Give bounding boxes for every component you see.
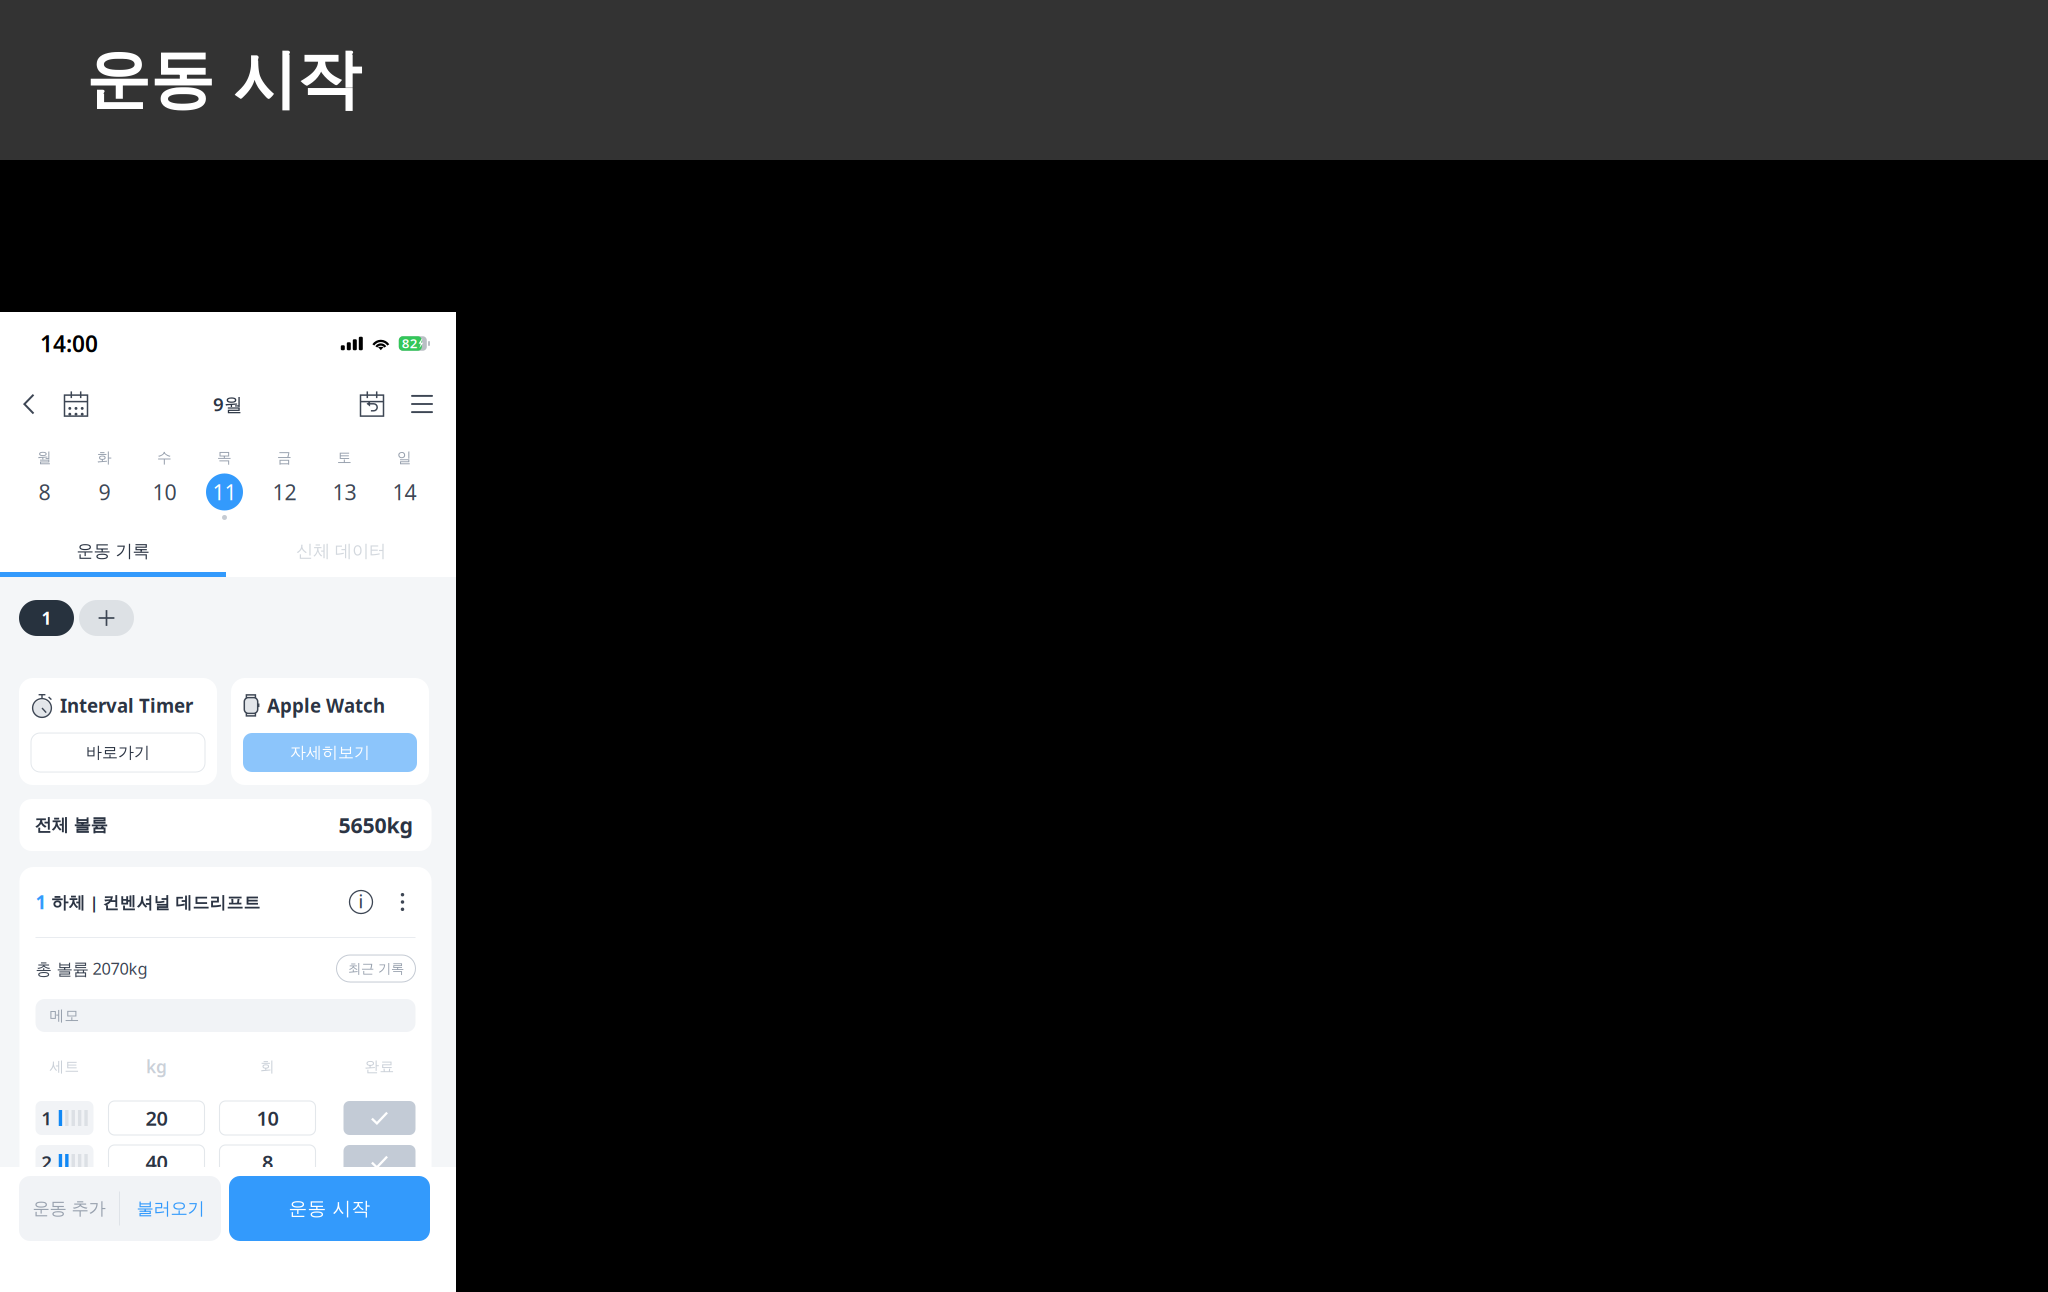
button[interactable]: Complete set [343, 1145, 415, 1179]
staticText: 자세히보기 [290, 742, 370, 763]
staticText: 14 [392, 478, 416, 506]
staticText: 운동 시작 [288, 1197, 370, 1220]
staticText: 전체 볼륨 [34, 814, 107, 836]
button[interactable]: 운동 시작 [229, 1176, 430, 1241]
staticText: 운동 추가 [32, 1198, 105, 1219]
button[interactable]: 수 [134, 433, 194, 530]
staticText: 20 [145, 1105, 167, 1131]
staticText: 8 [262, 1149, 273, 1175]
staticText: 총 볼륨 2070kg [35, 957, 147, 980]
staticText: 10 [152, 478, 176, 506]
button[interactable]: 월 [14, 433, 74, 530]
staticText: 82 [402, 334, 418, 352]
button[interactable]: 신체 데이터 [226, 530, 456, 572]
button[interactable]: 일 [374, 433, 434, 530]
staticText: 완료 [364, 1057, 394, 1076]
staticText: 10 [256, 1105, 278, 1131]
button[interactable]: Add routine [79, 600, 134, 636]
button[interactable]: Menu [409, 382, 435, 426]
button[interactable]: 목 [194, 433, 254, 530]
staticText: Interval Timer [60, 693, 193, 718]
staticText: 바로가기 [86, 742, 150, 763]
button[interactable]: 바로가기 [31, 733, 205, 772]
staticText: 월 [37, 448, 52, 467]
button[interactable]: History [356, 382, 388, 426]
button[interactable]: 화 [74, 433, 134, 530]
staticText: 금 [277, 448, 292, 467]
staticText: Apple Watch [267, 693, 385, 718]
staticText: 회 [260, 1057, 275, 1076]
staticText: 40 [145, 1149, 167, 1175]
button[interactable]: 금 [254, 433, 314, 530]
button[interactable]: Calendar [60, 382, 92, 426]
button[interactable]: 최근 기록 [336, 955, 415, 982]
button[interactable]: 토 [314, 433, 374, 530]
button[interactable]: Back [14, 382, 44, 426]
staticText: 최근 기록 [348, 960, 404, 977]
button[interactable]: 1 [19, 600, 74, 636]
button[interactable]: Exercise info [349, 890, 372, 913]
staticText: 세트 [49, 1057, 79, 1076]
staticText: 신체 데이터 [296, 540, 386, 562]
staticText: 수 [157, 448, 172, 467]
staticText: 운동 기록 [76, 540, 149, 562]
staticText: 8 [38, 478, 50, 506]
staticText: 목 [217, 448, 232, 467]
staticText: 불러오기 [136, 1198, 204, 1219]
staticText: 11 [212, 478, 236, 506]
staticText: 14:00 [40, 328, 98, 358]
staticText: 하체 | 컨벤셔널 데드리프트 [46, 891, 260, 913]
staticText: 화 [97, 448, 112, 467]
staticText: 12 [272, 478, 296, 506]
staticText: 9 [98, 478, 110, 506]
button[interactable]: Complete set [343, 1101, 415, 1135]
staticText: 5650kg [338, 811, 412, 839]
button[interactable]: 불러오기 [120, 1176, 221, 1241]
staticText: 1 [35, 890, 46, 914]
staticText: 일 [397, 448, 412, 467]
staticText: 2 [41, 1150, 52, 1174]
staticText: kg [146, 1055, 167, 1078]
button[interactable]: 운동 기록 [0, 530, 226, 572]
staticText: 1 [41, 1106, 52, 1130]
button[interactable]: More options [394, 891, 410, 913]
staticText: 9월 [213, 391, 243, 417]
staticText: 1 [41, 606, 51, 629]
staticText: 운동 시작 [86, 40, 361, 120]
staticText: i [358, 890, 363, 913]
staticText: 토 [337, 448, 352, 467]
button[interactable]: 자세히보기 [243, 733, 417, 772]
staticText: 메모 [49, 1006, 79, 1025]
staticText: 13 [332, 478, 356, 506]
button[interactable]: 운동 추가 [19, 1176, 119, 1241]
